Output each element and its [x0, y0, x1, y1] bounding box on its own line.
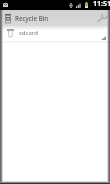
button[interactable]: Settings: [94, 10, 110, 26]
staticText: sdcard: [19, 29, 38, 37]
staticText: 11:51: [93, 0, 110, 9]
button[interactable]: Recycle Bin: [0, 10, 61, 26]
button[interactable]: sdcard: [0, 26, 110, 40]
staticText: Recycle Bin: [15, 14, 49, 22]
